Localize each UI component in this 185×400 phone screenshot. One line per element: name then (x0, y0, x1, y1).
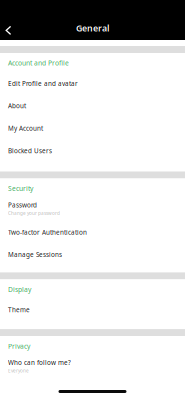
staticText: Display (8, 285, 31, 294)
staticText: My Account (8, 124, 43, 133)
button[interactable]: Manage Sessions (0, 249, 185, 271)
staticText: Manage Sessions (8, 250, 62, 259)
button[interactable]: Edit Profile and avatar (0, 78, 185, 100)
button[interactable]: My Account (0, 122, 185, 145)
staticText: Blocked Users (8, 146, 52, 155)
button[interactable]: Blocked Users (0, 145, 185, 167)
button[interactable]: Who can follow me? (0, 361, 185, 384)
staticText: General (76, 22, 109, 34)
staticText: About (8, 102, 26, 110)
button[interactable]: Password (0, 203, 185, 226)
staticText: Password (8, 201, 37, 209)
button[interactable]: Theme (0, 304, 185, 326)
staticText: Change your password (8, 210, 60, 216)
staticText: Privacy (8, 341, 30, 351)
staticText: Edit Profile and avatar (8, 79, 78, 88)
button[interactable]: Back (0, 22, 19, 34)
staticText: Two-factor Authentication (8, 228, 87, 236)
staticText: Everyone (8, 367, 29, 374)
staticText: Account and Profile (8, 58, 69, 67)
staticText: Who can follow me? (8, 358, 71, 367)
staticText: Theme (8, 306, 30, 314)
button[interactable]: Two-factor Authentication (0, 226, 185, 249)
button[interactable]: About (0, 100, 185, 122)
staticText: Security (8, 184, 33, 193)
